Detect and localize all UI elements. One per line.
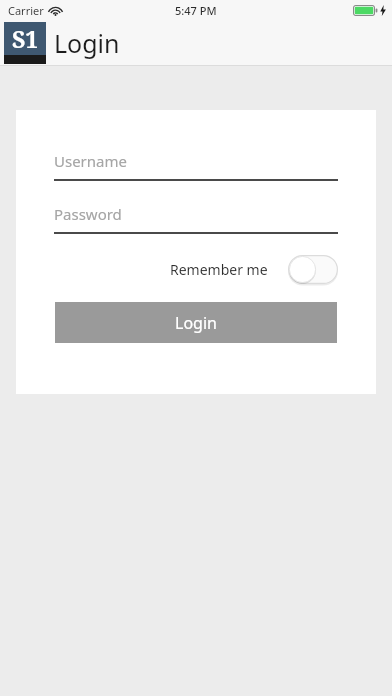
staticText: 5:47 PM [175, 3, 217, 18]
staticText: Remember me [170, 260, 268, 279]
button[interactable]: Password [54, 201, 338, 234]
staticText: Username [54, 151, 127, 171]
staticText: S1 [12, 23, 39, 54]
other: S1 logo [4, 22, 46, 64]
staticText: Carrier [8, 3, 44, 18]
button[interactable]: Remember me toggle [288, 255, 338, 284]
button[interactable]: Remember me [54, 252, 338, 286]
button[interactable]: Username [54, 148, 338, 181]
button[interactable]: Login [55, 302, 337, 343]
staticText: Login [175, 312, 217, 334]
staticText: Password [54, 204, 122, 224]
staticText: Login [54, 26, 120, 60]
